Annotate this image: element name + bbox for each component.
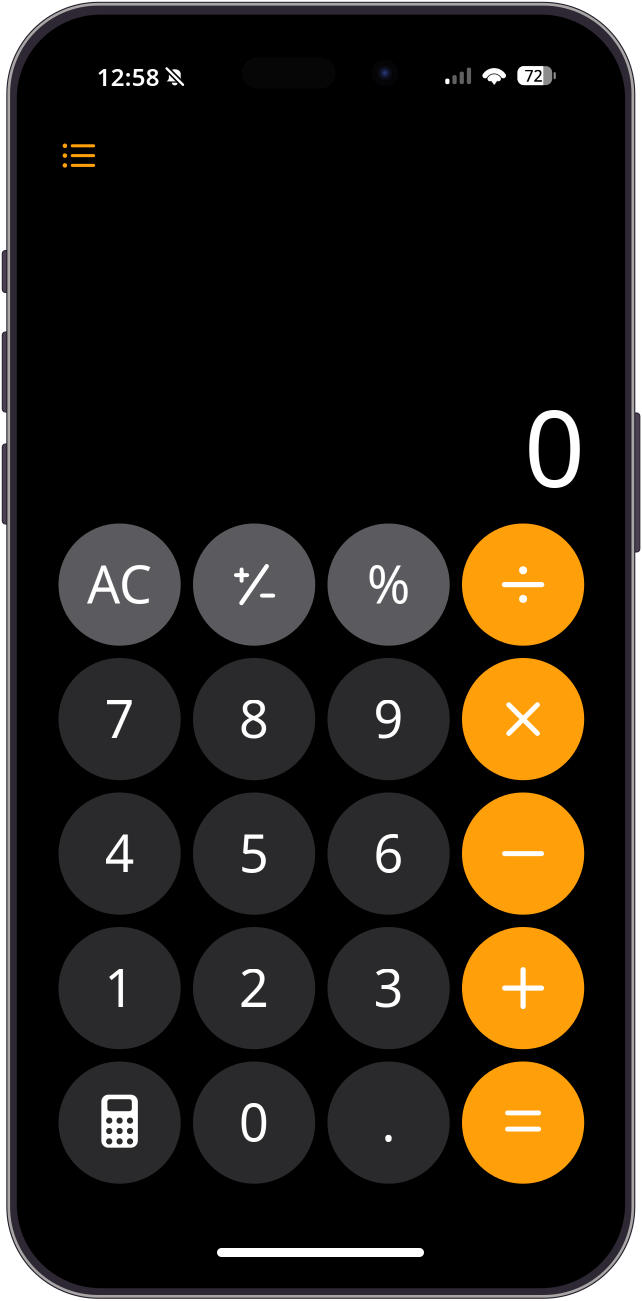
staticText: 9 xyxy=(374,683,404,752)
staticText: 12:58 xyxy=(97,61,160,93)
staticText: 1 xyxy=(105,952,135,1021)
button[interactable]: 0 xyxy=(193,1061,315,1184)
button[interactable]: History xyxy=(51,128,107,184)
button[interactable]: % xyxy=(327,523,450,646)
button[interactable]: 6 xyxy=(327,792,450,915)
staticText: 0 xyxy=(239,1087,269,1156)
button[interactable]: Equals xyxy=(462,1061,584,1184)
button[interactable]: Minus xyxy=(462,792,584,915)
button[interactable]: Divide xyxy=(462,523,584,646)
staticText: 3 xyxy=(374,952,404,1021)
button[interactable]: 5 xyxy=(193,792,315,915)
button[interactable]: Calculator mode xyxy=(58,1061,181,1184)
staticText: 4 xyxy=(105,818,135,887)
button[interactable]: 1 xyxy=(58,927,181,1049)
button[interactable]: 3 xyxy=(327,927,450,1049)
button[interactable]: Multiply xyxy=(462,658,584,780)
button[interactable]: Plus xyxy=(462,927,584,1049)
button[interactable]: 2 xyxy=(193,927,315,1049)
staticText: % xyxy=(367,549,410,618)
button[interactable]: 4 xyxy=(58,792,181,915)
staticText: 0 xyxy=(524,375,585,516)
staticText: 72 xyxy=(525,65,543,86)
staticText: 8 xyxy=(239,683,269,752)
staticText: 7 xyxy=(105,683,135,752)
button[interactable]: 9 xyxy=(327,658,450,780)
staticText: 2 xyxy=(239,952,269,1021)
button[interactable]: 8 xyxy=(193,658,315,780)
staticText: . xyxy=(382,1087,396,1156)
button[interactable]: . xyxy=(327,1061,450,1184)
button[interactable]: Plus Minus xyxy=(193,523,315,646)
button[interactable]: 7 xyxy=(58,658,181,780)
staticText: 6 xyxy=(374,818,404,887)
button[interactable]: AC xyxy=(58,523,181,646)
staticText: 5 xyxy=(239,818,269,887)
staticText: AC xyxy=(87,549,152,618)
